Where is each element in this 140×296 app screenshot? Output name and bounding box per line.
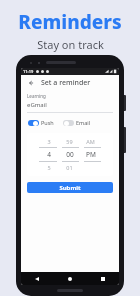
staticText: Learning bbox=[27, 93, 46, 99]
staticText: 3 bbox=[47, 138, 51, 145]
staticText: Email bbox=[76, 119, 91, 126]
staticText: Reminders bbox=[18, 9, 122, 35]
button[interactable]: Learning bbox=[21, 90, 119, 115]
staticText: Push bbox=[41, 119, 54, 126]
staticText: 00 bbox=[66, 150, 74, 159]
staticText: PM bbox=[86, 150, 96, 159]
button[interactable]: Recent apps bbox=[86, 272, 119, 285]
button[interactable]: Push bbox=[28, 119, 54, 126]
staticText: 01 bbox=[66, 164, 73, 171]
button[interactable]: Home bbox=[53, 272, 86, 285]
staticText: 59 bbox=[66, 138, 73, 145]
button[interactable]: Email bbox=[63, 119, 91, 126]
staticText: 5 bbox=[47, 164, 51, 171]
staticText: Stay on track bbox=[37, 37, 104, 52]
button[interactable]: Submit bbox=[27, 182, 113, 193]
staticText: Set a reminder bbox=[41, 78, 91, 88]
staticText: 4 bbox=[47, 150, 51, 159]
staticText: eGmail bbox=[27, 101, 47, 109]
staticText: AM bbox=[86, 138, 95, 145]
staticText: Submit bbox=[59, 184, 81, 192]
button[interactable]: Back bbox=[25, 77, 36, 88]
staticText: 11:19 bbox=[23, 69, 34, 74]
button[interactable]: Back bbox=[21, 272, 53, 285]
